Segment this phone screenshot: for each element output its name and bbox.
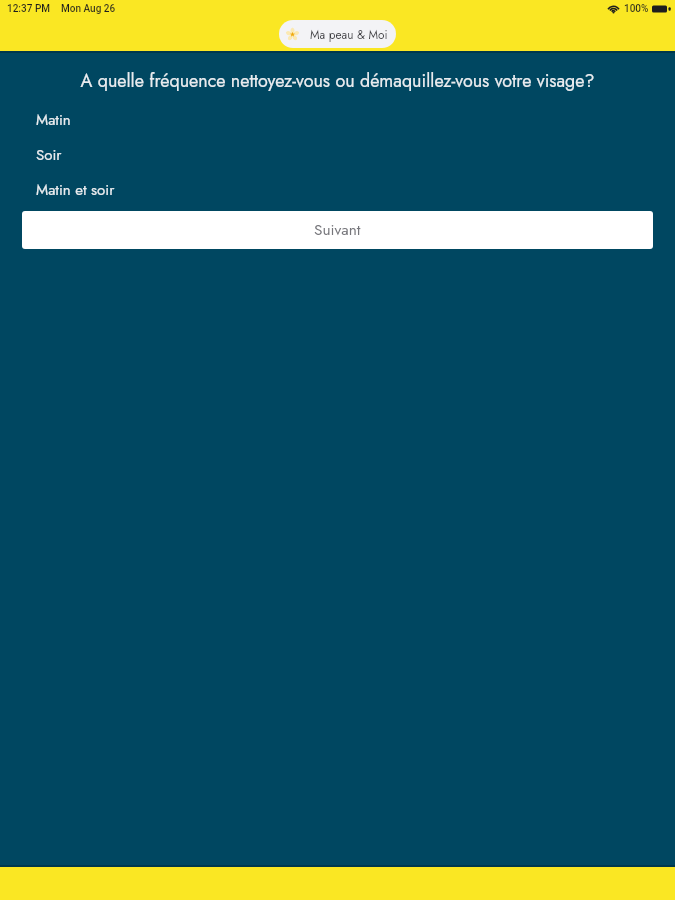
other: Wi-Fi signal bbox=[607, 4, 620, 13]
button[interactable]: Ma peau & Moi logo bbox=[279, 20, 396, 48]
staticText: Matin bbox=[36, 109, 71, 131]
staticText: 100% bbox=[624, 3, 649, 15]
staticText: A quelle fréquence nettoyez-vous ou déma… bbox=[0, 68, 675, 94]
staticText: Ma peau & Moi bbox=[310, 26, 388, 43]
other: Battery full bbox=[652, 4, 671, 14]
staticText: Soir bbox=[36, 144, 62, 166]
button[interactable]: Suivant bbox=[22, 211, 653, 249]
button[interactable]: Matin et soir bbox=[0, 172, 675, 207]
button[interactable]: Soir bbox=[0, 137, 675, 172]
button[interactable]: Matin bbox=[0, 102, 675, 137]
staticText: 12:37 PM bbox=[7, 3, 51, 15]
staticText: Matin et soir bbox=[36, 179, 115, 201]
other: Ma peau & Moi logo bbox=[284, 25, 301, 44]
staticText: Suivant bbox=[314, 219, 361, 241]
staticText: Mon Aug 26 bbox=[61, 3, 116, 15]
